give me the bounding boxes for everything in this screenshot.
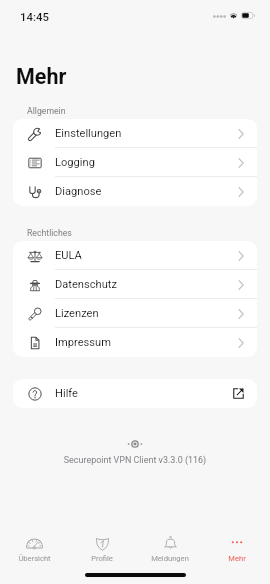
button[interactable]: Hilfe [13, 379, 257, 408]
staticText: Lizenzen [55, 307, 99, 320]
staticText: Diagnose [55, 185, 102, 198]
staticText: EULA [55, 249, 82, 262]
button[interactable]: Übersicht [0, 524, 68, 568]
button[interactable]: Diagnose [13, 177, 257, 206]
staticText: Einstellungen [55, 127, 122, 140]
staticText: Logging [55, 156, 95, 169]
staticText: Meldungen [151, 554, 189, 563]
staticText: Profile [91, 554, 113, 563]
staticText: Mehr [16, 64, 67, 89]
button[interactable]: EULA [13, 241, 257, 270]
button[interactable]: Profile [68, 524, 136, 568]
button[interactable]: Impressum [13, 328, 257, 357]
staticText: Securepoint VPN Client v3.3.0 (116) [0, 455, 270, 466]
button[interactable]: Datenschutz [13, 270, 257, 299]
button[interactable]: Einstellungen [13, 119, 257, 148]
staticText: Impressum [55, 336, 111, 349]
staticText: Allgemein [27, 106, 66, 116]
staticText: Datenschutz [55, 278, 117, 291]
staticText: Übersicht [18, 554, 51, 563]
button[interactable]: Meldungen [136, 524, 204, 568]
button[interactable]: Mehr [204, 524, 270, 568]
button[interactable]: Logging [13, 148, 257, 177]
staticText: Mehr [228, 554, 246, 563]
staticText: 14:45 [20, 10, 49, 23]
staticText: Rechtliches [27, 228, 72, 238]
button[interactable]: Lizenzen [13, 299, 257, 328]
other: Open help in browser [233, 388, 244, 399]
staticText: Hilfe [55, 387, 78, 400]
